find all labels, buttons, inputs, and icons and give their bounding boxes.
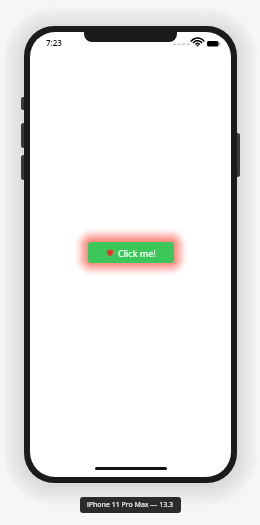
staticText: Click me! [118, 247, 156, 259]
staticText: 7:23 [46, 37, 62, 48]
staticText: iPhone 11 Pro Max — 13.3 [87, 500, 174, 510]
button[interactable]: Heart [88, 242, 174, 263]
other: Heart [106, 249, 114, 257]
